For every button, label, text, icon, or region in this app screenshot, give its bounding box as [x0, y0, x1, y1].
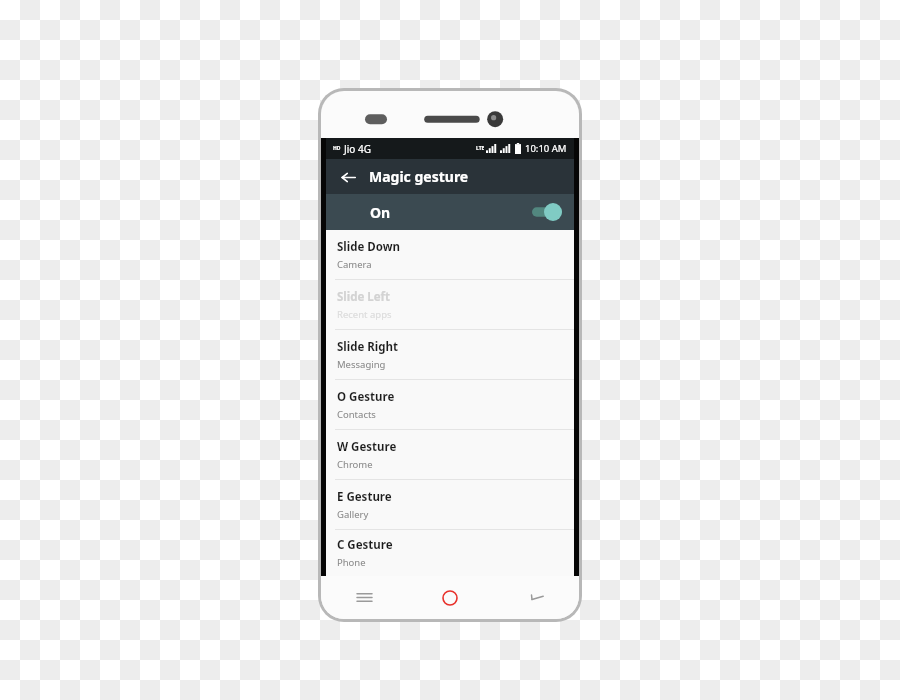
staticText: Chrome [337, 458, 373, 471]
staticText: W Gesture [337, 439, 397, 455]
staticText: 10:10 AM [525, 142, 567, 155]
staticText: Contacts [337, 408, 376, 421]
staticText: Messaging [337, 358, 386, 371]
staticText: Phone [337, 556, 366, 569]
staticText: O Gesture [337, 389, 395, 405]
staticText: Camera [337, 258, 372, 271]
button[interactable]: Slide Left [326, 280, 574, 329]
staticText: HD [333, 145, 341, 152]
staticText: E Gesture [337, 489, 392, 505]
button[interactable]: E Gesture [326, 480, 574, 529]
button[interactable]: W Gesture [326, 430, 574, 479]
button[interactable]: On [326, 194, 574, 230]
button[interactable]: Slide Down [326, 230, 574, 279]
staticText: C Gesture [337, 537, 393, 553]
staticText: Magic gesture [369, 167, 469, 186]
button[interactable]: Home [407, 576, 493, 619]
staticText: Slide Left [337, 289, 391, 305]
button[interactable]: Back [493, 576, 579, 619]
button[interactable]: Menu [321, 576, 407, 619]
button[interactable]: O Gesture [326, 380, 574, 429]
button[interactable]: Back [335, 164, 361, 190]
staticText: Slide Right [337, 339, 399, 355]
button[interactable]: Toggle magic gesture [532, 203, 562, 221]
button[interactable]: C Gesture [326, 530, 574, 576]
staticText: Slide Down [337, 239, 401, 255]
staticText: On [370, 203, 391, 222]
button[interactable]: Slide Right [326, 330, 574, 379]
staticText: Recent apps [337, 308, 392, 321]
staticText: LTE [476, 145, 485, 152]
staticText: Gallery [337, 508, 369, 521]
staticText: Jio 4G [344, 142, 371, 156]
